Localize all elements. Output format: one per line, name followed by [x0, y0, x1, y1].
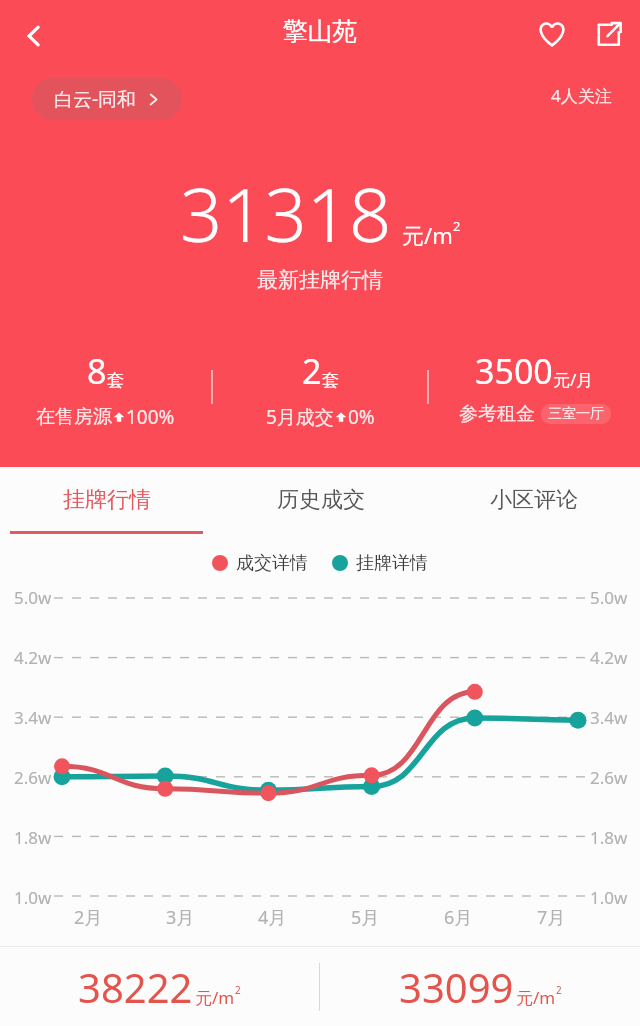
button[interactable]: 挂牌行情 — [0, 467, 214, 533]
staticText: 2 — [302, 348, 322, 394]
staticText: 1.0w — [14, 886, 52, 909]
staticText: 3500 — [475, 348, 553, 394]
staticText: 最新挂牌行情 — [0, 267, 640, 293]
staticText: 5.0w — [590, 586, 628, 609]
staticText: 5.0w — [14, 586, 52, 609]
staticText: 5月成交 — [266, 404, 334, 430]
staticText: 2 — [556, 983, 562, 996]
staticText: 挂牌详情 — [356, 552, 428, 575]
staticText: 8 — [87, 348, 107, 394]
staticText: 7月 — [537, 905, 566, 930]
staticText: 历史成交 — [277, 486, 365, 514]
staticText: 成交详情 — [236, 552, 308, 575]
staticText: 参考租金 — [459, 402, 535, 426]
staticText: 1.0w — [590, 886, 628, 909]
button[interactable]: 33099 — [320, 947, 640, 1026]
button[interactable]: 白云-同和 — [32, 78, 182, 120]
staticText: 4.2w — [14, 646, 52, 669]
staticText: 2月 — [74, 905, 103, 930]
button[interactable]: Favorite — [526, 8, 578, 60]
staticText: 3月 — [166, 905, 195, 930]
staticText: 4月 — [258, 905, 287, 930]
staticText: 6月 — [444, 905, 473, 930]
staticText: 1.8w — [14, 826, 52, 849]
button[interactable]: 38222 — [0, 947, 319, 1026]
staticText: 2.6w — [14, 766, 52, 789]
staticText: 100% — [126, 404, 175, 430]
staticText: 擎山苑 — [0, 16, 640, 47]
staticText: 挂牌行情 — [63, 486, 151, 514]
staticText: 三室一厅 — [548, 405, 604, 423]
staticText: 套 — [107, 370, 124, 391]
staticText: 2 — [453, 217, 461, 234]
staticText: 套 — [322, 370, 339, 391]
staticText: 5月 — [351, 905, 380, 930]
staticText: 元/月 — [553, 368, 594, 391]
staticText: 38222 — [78, 960, 193, 1014]
button[interactable]: 历史成交 — [214, 467, 427, 533]
staticText: 2.6w — [590, 766, 628, 789]
staticText: 31318 — [180, 163, 392, 264]
staticText: 2 — [235, 983, 241, 996]
staticText: 元/m — [516, 986, 556, 1009]
staticText: 3.4w — [14, 706, 52, 729]
button[interactable]: Share — [582, 8, 634, 60]
staticText: 33099 — [399, 960, 514, 1014]
staticText: 1.8w — [590, 826, 628, 849]
staticText: 元/m — [402, 220, 453, 250]
button[interactable]: 小区评论 — [427, 467, 640, 533]
staticText: 白云-同和 — [54, 86, 137, 112]
staticText: 3.4w — [590, 706, 628, 729]
staticText: 4.2w — [590, 646, 628, 669]
staticText: 元/m — [195, 986, 235, 1009]
staticText: 小区评论 — [490, 486, 578, 514]
staticText: 在售房源 — [36, 405, 112, 429]
button[interactable]: Back — [6, 8, 62, 64]
staticText: 0% — [348, 404, 375, 430]
staticText: 4人关注 — [551, 84, 612, 107]
